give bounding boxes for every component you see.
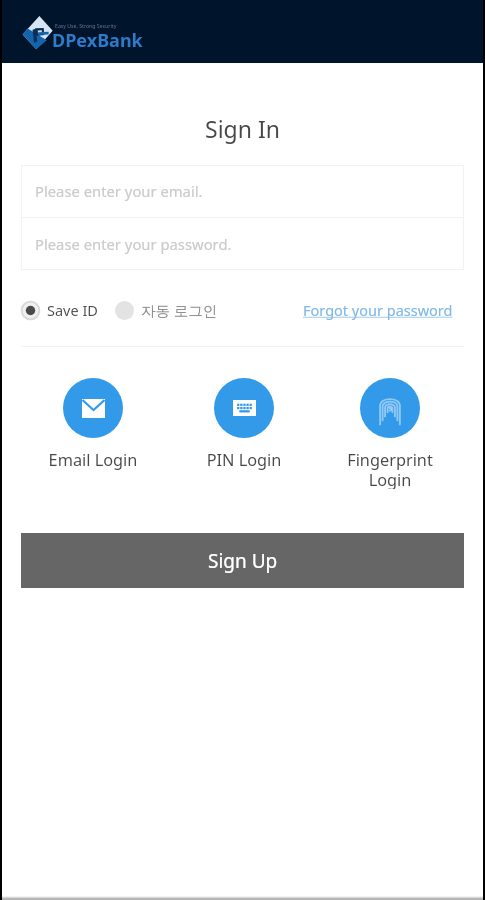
button[interactable]: Sign Up	[21, 533, 464, 588]
staticText: 자동 로그인	[141, 300, 218, 320]
staticText: Fingerprint Login	[330, 449, 450, 489]
button[interactable]: Forgot your password	[303, 300, 453, 320]
staticText: Sign Up	[208, 548, 278, 574]
button[interactable]: Save ID	[21, 300, 98, 320]
staticText: DPexBank	[52, 28, 143, 53]
staticText: Easy Use, Strong Security	[55, 22, 117, 29]
staticText: Please enter your password.	[35, 234, 232, 254]
staticText: Email Login	[33, 449, 153, 471]
staticText: Please enter your email.	[35, 181, 203, 201]
staticText: PIN Login	[184, 449, 304, 471]
button[interactable]: Email Login	[63, 378, 123, 438]
button[interactable]: 자동 로그인	[115, 300, 218, 320]
staticText: Sign In	[0, 113, 485, 144]
staticText: Save ID	[47, 300, 98, 320]
button[interactable]: Please enter your password.	[21, 218, 464, 270]
staticText: Forgot your password	[303, 300, 453, 320]
button[interactable]: Fingerprint Login	[360, 378, 420, 438]
button[interactable]: Please enter your email.	[21, 165, 464, 217]
button[interactable]: PIN Login	[214, 378, 274, 438]
